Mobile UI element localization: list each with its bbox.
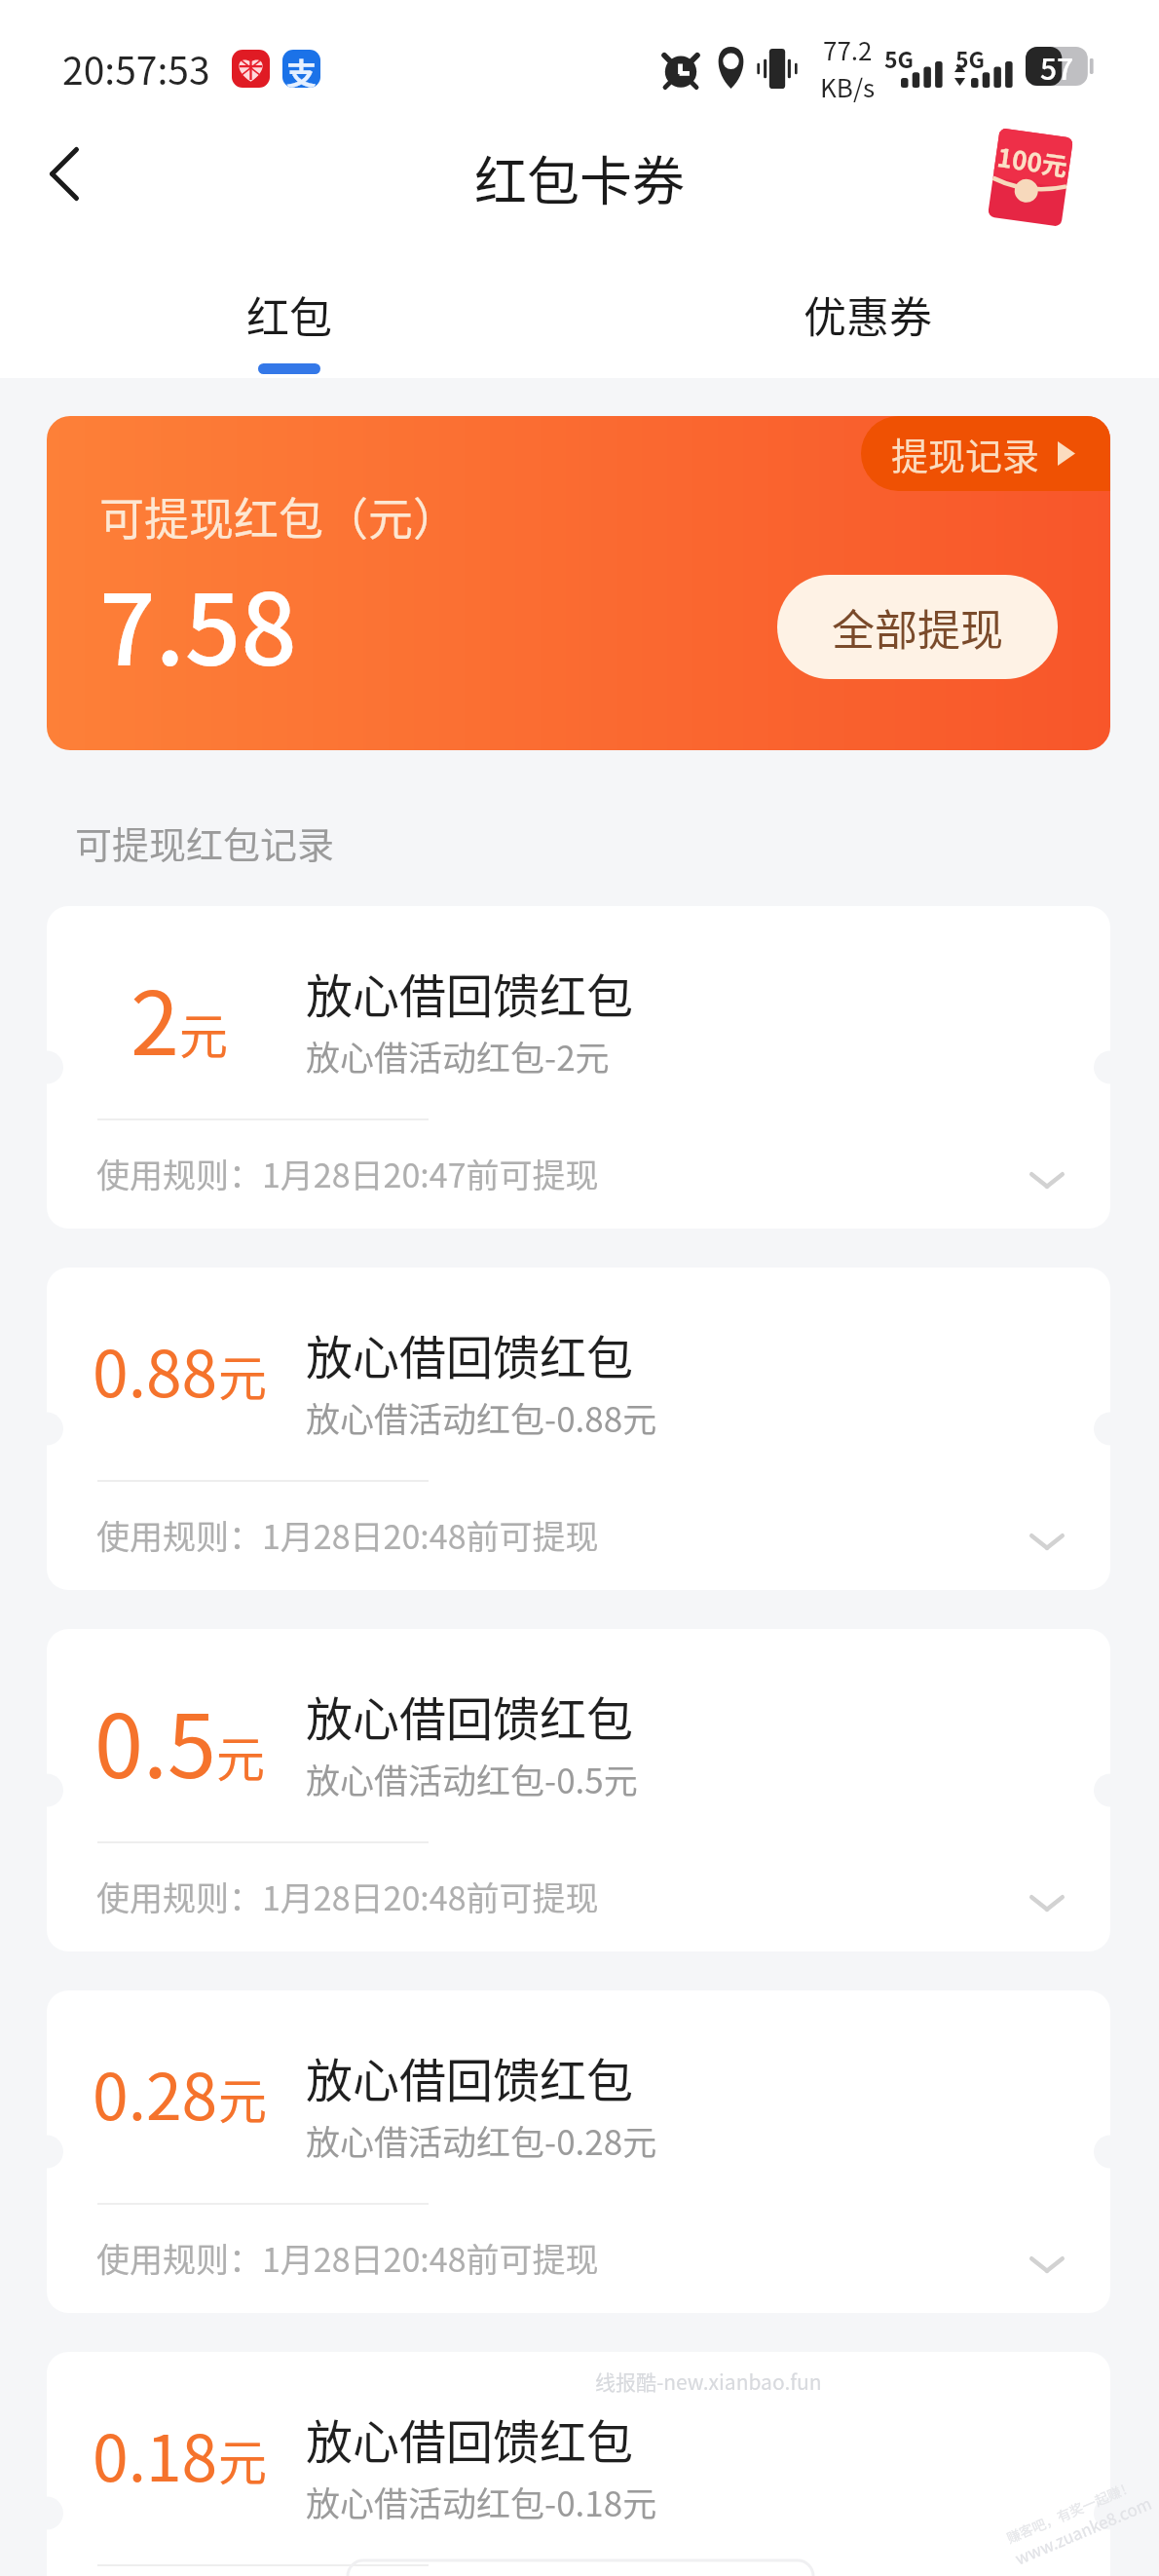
button[interactable]: 2 — [47, 906, 1110, 1229]
button[interactable]: 0.88 — [47, 1268, 1110, 1590]
staticText: 放心借活动红包-0.28元 — [306, 2115, 657, 2165]
button[interactable]: Expand details — [1005, 1864, 1089, 1942]
staticText: 放心借回馈红包 — [306, 2405, 634, 2473]
staticText: 放心借活动红包-0.5元 — [306, 1754, 638, 1803]
staticText: 红包卡券 — [474, 139, 685, 215]
staticText: 使用规则：1月28日20:48前可提现 — [96, 1873, 599, 1920]
staticText: 100元 — [995, 137, 1071, 184]
staticText: 使用规则：1月28日20:48前可提现 — [96, 2234, 599, 2282]
button[interactable]: 优惠券 — [750, 249, 985, 378]
staticText: 优惠券 — [804, 284, 932, 346]
button[interactable]: 全部提现 — [777, 575, 1058, 679]
staticText: 元 — [216, 1721, 265, 1791]
staticText: 全部提现 — [832, 596, 1003, 659]
button[interactable]: Expand details — [1005, 2225, 1089, 2303]
staticText: 7.58 — [99, 551, 297, 694]
staticText: 20:57:53 — [62, 41, 210, 95]
staticText: 使用规则：1月28日20:48前可提现 — [96, 1511, 599, 1559]
staticText: 支 — [286, 50, 317, 88]
staticText: 放心借活动红包-2元 — [306, 1031, 610, 1080]
staticText: www.zuanke8.com — [1011, 2490, 1155, 2570]
staticText: 放心借活动红包-0.18元 — [306, 2477, 657, 2526]
staticText: 使用规则：1月28日20:47前可提现 — [96, 1150, 599, 1197]
staticText: 放心借回馈红包 — [306, 2043, 634, 2111]
staticText: 元 — [179, 998, 228, 1068]
staticText: 可提现红包记录 — [75, 815, 335, 869]
button[interactable]: Expand details — [1005, 1502, 1089, 1580]
staticText: 5G — [955, 42, 986, 74]
staticText: 元 — [218, 2424, 267, 2494]
button[interactable]: 提现记录 — [47, 416, 1110, 750]
button[interactable]: 红包 — [171, 249, 406, 378]
button[interactable]: Expand details — [1005, 1141, 1089, 1219]
staticText: 赚客吧，有奖一起赚！ — [1003, 2476, 1137, 2547]
staticText: 提现记录 — [891, 427, 1040, 480]
staticText: 77.2 — [823, 31, 873, 68]
staticText: 放心借回馈红包 — [306, 959, 634, 1027]
staticText: 元 — [218, 1340, 267, 1410]
button[interactable]: 0.18 — [47, 2352, 1110, 2576]
button[interactable]: Back — [19, 130, 108, 218]
staticText: 0.88 — [93, 1322, 218, 1416]
staticText: 0.18 — [93, 2406, 218, 2500]
staticText: 57 — [1040, 46, 1074, 85]
button[interactable]: 提现记录 — [861, 416, 1110, 491]
staticText: 红包 — [246, 284, 332, 346]
button[interactable]: 0.28 — [47, 1990, 1110, 2313]
staticText: 2 — [131, 954, 179, 1061]
button[interactable]: 0.5 — [47, 1629, 1110, 1951]
staticText: 可提现红包（元） — [99, 483, 458, 549]
staticText: 放心借活动红包-0.88元 — [306, 1392, 657, 1442]
staticText: 线报酷-new.xianbao.fun — [595, 2367, 822, 2396]
staticText: KB/s — [820, 68, 876, 105]
staticText: 元 — [218, 2063, 267, 2133]
staticText: 放心借回馈红包 — [306, 1320, 634, 1388]
staticText: 放心借回馈红包 — [306, 1682, 634, 1750]
button[interactable]: 100 yuan red packet — [968, 114, 1093, 241]
staticText: 5G — [884, 42, 915, 74]
staticText: 0.5 — [94, 1677, 216, 1784]
staticText: 0.28 — [93, 2045, 218, 2139]
